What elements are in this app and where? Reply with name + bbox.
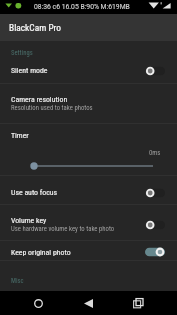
staticText: Use auto focus — [11, 188, 58, 197]
button[interactable]: Silent mode — [0, 59, 177, 82]
staticText: Silent mode — [11, 66, 48, 75]
button[interactable]: Volume key — [0, 206, 177, 243]
staticText: BlackCam Pro — [9, 22, 62, 33]
staticText: Keep original photo — [11, 248, 71, 257]
button[interactable]: Keep original photo — [0, 242, 177, 262]
button[interactable]: Recent apps — [129, 294, 147, 312]
staticText: Resolution used to take photos — [11, 104, 93, 112]
staticText: 0ms — [149, 149, 161, 157]
staticText: Camera resolution — [11, 95, 68, 104]
button[interactable]: Back — [79, 294, 97, 312]
button[interactable]: Home — [29, 294, 47, 312]
button[interactable]: Timer — [0, 123, 177, 176]
staticText: Timer — [11, 131, 29, 140]
staticText: Volume key — [11, 216, 47, 225]
staticText: Use hardware volume key to take photo — [11, 225, 115, 233]
staticText: Misc — [11, 277, 24, 285]
button[interactable]: Camera resolution — [0, 83, 177, 123]
staticText: 08:36 c6 16.05 B:90% M:619MB — [34, 3, 130, 11]
button[interactable]: Use auto focus — [0, 178, 177, 207]
staticText: Settings — [11, 49, 33, 57]
